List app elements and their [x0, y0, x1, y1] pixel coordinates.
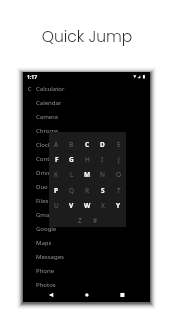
- button[interactable]: K: [49, 167, 64, 182]
- button[interactable]: Recents: [108, 282, 136, 302]
- button[interactable]: Back: [37, 282, 65, 302]
- button[interactable]: Home: [73, 282, 101, 302]
- staticText: Q: [69, 186, 75, 195]
- staticText: I: [101, 155, 104, 164]
- staticText: S: [101, 186, 105, 195]
- button[interactable]: Phone: [23, 264, 150, 278]
- staticText: Drive: [36, 169, 51, 177]
- staticText: Chrome: [36, 127, 59, 135]
- staticText: Phone: [36, 267, 55, 275]
- staticText: Clock: [36, 141, 52, 149]
- staticText: C: [28, 86, 32, 93]
- staticText: L: [70, 170, 74, 179]
- button[interactable]: Contacts: [23, 152, 150, 166]
- button[interactable]: I: [95, 152, 110, 167]
- staticText: W: [84, 201, 91, 210]
- staticText: Files: [36, 197, 49, 205]
- button[interactable]: Google: [23, 222, 150, 236]
- button[interactable]: F: [49, 152, 64, 167]
- staticText: H: [85, 155, 90, 164]
- staticText: Y: [116, 201, 121, 210]
- button[interactable]: U: [49, 198, 64, 213]
- staticText: Camera: [36, 113, 58, 121]
- button[interactable]: W: [80, 198, 95, 213]
- button[interactable]: L: [64, 167, 79, 182]
- button[interactable]: V: [64, 198, 79, 213]
- button[interactable]: Z: [72, 213, 87, 228]
- button[interactable]: E: [111, 137, 126, 152]
- button[interactable]: G: [64, 152, 79, 167]
- button[interactable]: H: [80, 152, 95, 167]
- button[interactable]: R: [80, 183, 95, 198]
- staticText: F: [55, 155, 59, 164]
- staticText: Z: [78, 216, 82, 225]
- staticText: G: [69, 155, 74, 164]
- button[interactable]: Calendar: [23, 96, 150, 110]
- button[interactable]: Files: [23, 194, 150, 208]
- staticText: X: [101, 201, 105, 210]
- button[interactable]: C: [80, 137, 95, 152]
- button[interactable]: B: [64, 137, 79, 152]
- button[interactable]: Clock: [23, 138, 150, 152]
- staticText: C: [85, 140, 90, 149]
- staticText: Contacts: [36, 155, 61, 163]
- button[interactable]: Maps: [23, 236, 150, 250]
- button[interactable]: N: [95, 167, 110, 182]
- button[interactable]: #: [88, 213, 103, 228]
- button[interactable]: D: [95, 137, 110, 152]
- staticText: Maps: [36, 239, 52, 247]
- button[interactable]: Duo: [23, 180, 150, 194]
- button[interactable]: Y: [111, 198, 126, 213]
- staticText: Calendar: [36, 99, 62, 107]
- staticText: Messages: [36, 253, 64, 261]
- staticText: M: [84, 170, 91, 179]
- staticText: O: [116, 170, 122, 179]
- button[interactable]: Camera: [23, 110, 150, 124]
- staticText: K: [54, 170, 59, 179]
- button[interactable]: Drive: [23, 166, 150, 180]
- staticText: D: [100, 140, 105, 149]
- staticText: B: [69, 140, 74, 149]
- button[interactable]: O: [111, 167, 126, 182]
- button[interactable]: Gmail: [23, 208, 150, 222]
- staticText: U: [54, 201, 59, 210]
- button[interactable]: Q: [64, 183, 79, 198]
- button[interactable]: Messages: [23, 250, 150, 264]
- button[interactable]: J: [111, 152, 126, 167]
- button[interactable]: C: [23, 82, 150, 96]
- staticText: R: [85, 186, 90, 195]
- button[interactable]: A: [49, 137, 64, 152]
- staticText: E: [117, 140, 121, 149]
- staticText: P: [54, 186, 59, 195]
- staticText: Duo: [36, 183, 48, 191]
- staticText: Calculator: [36, 85, 65, 93]
- button[interactable]: Photos: [23, 278, 150, 292]
- staticText: Google: [36, 225, 57, 233]
- button[interactable]: S: [95, 183, 110, 198]
- staticText: A: [54, 140, 59, 149]
- button[interactable]: X: [95, 198, 110, 213]
- staticText: Gmail: [36, 211, 53, 219]
- staticText: #: [93, 216, 98, 225]
- button[interactable]: T: [111, 183, 126, 198]
- staticText: N: [100, 170, 105, 179]
- button[interactable]: Chrome: [23, 124, 150, 138]
- staticText: T: [117, 186, 121, 195]
- staticText: J: [118, 155, 120, 164]
- staticText: 1:17: [27, 74, 37, 81]
- button[interactable]: P: [49, 183, 64, 198]
- button[interactable]: M: [80, 167, 95, 182]
- staticText: Photos: [36, 281, 56, 289]
- staticText: Quick Jump: [0, 26, 174, 48]
- staticText: V: [69, 201, 74, 210]
